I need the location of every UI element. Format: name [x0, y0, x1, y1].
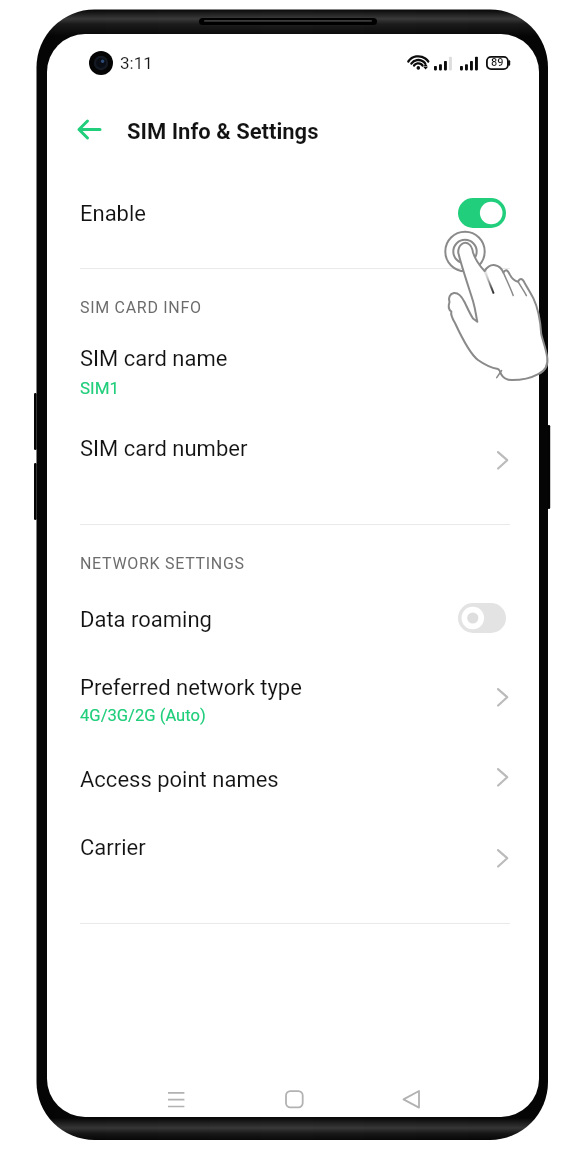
staticText: Data roaming — [80, 607, 212, 633]
button[interactable]: Carrier — [47, 819, 539, 877]
button[interactable]: Data roaming, off — [458, 603, 506, 633]
staticText: SIM CARD INFO — [80, 298, 202, 317]
staticText: 89 — [491, 56, 504, 69]
button[interactable]: Home — [272, 1077, 316, 1117]
button[interactable]: Back — [391, 1077, 435, 1117]
staticText: SIM card name — [80, 346, 228, 372]
button[interactable]: Recent apps — [154, 1078, 198, 1117]
staticText: SIM1 — [80, 378, 120, 398]
button[interactable]: Access point names — [47, 751, 539, 809]
staticText: SIM card number — [80, 436, 248, 462]
button[interactable]: Back — [67, 106, 113, 152]
staticText: Preferred network type — [80, 675, 302, 701]
staticText: 4G/3G/2G (Auto) — [80, 706, 206, 725]
staticText: 3:11 — [120, 53, 153, 73]
button[interactable]: Enable — [47, 168, 539, 234]
button[interactable]: Enable, on — [458, 198, 506, 228]
button[interactable]: Data roaming — [47, 590, 539, 648]
staticText: Enable — [80, 201, 146, 227]
button[interactable]: Preferred network type — [47, 663, 539, 733]
staticText: SIM Info & Settings — [127, 119, 319, 145]
staticText: Carrier — [80, 835, 146, 861]
staticText: NETWORK SETTINGS — [80, 554, 245, 573]
staticText: Access point names — [80, 767, 279, 793]
button[interactable]: SIM card number — [47, 420, 539, 478]
button[interactable]: SIM card name — [47, 335, 539, 405]
